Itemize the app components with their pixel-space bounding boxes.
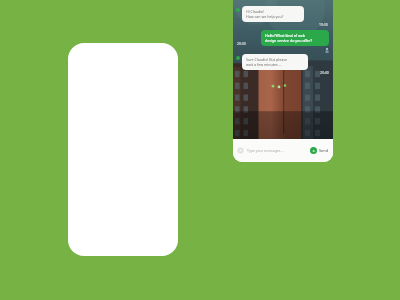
staticText: 20:30 [237, 41, 246, 46]
button[interactable]: Add attachment [237, 147, 244, 154]
button[interactable] [68, 43, 178, 256]
staticText: Hello! What kind of web design service d… [265, 33, 313, 43]
button[interactable]: Hi Claudio! How can we help you? [242, 6, 304, 22]
button[interactable]: Hello! What kind of web design service d… [261, 30, 329, 46]
button[interactable]: Type your messages ... [247, 148, 308, 153]
staticText: Type your messages ... [247, 148, 285, 153]
staticText: Sure Claudio! But please wait a few minu… [246, 57, 287, 67]
button[interactable]: Sure Claudio! But please wait a few minu… [242, 54, 308, 70]
staticText: Send [319, 148, 329, 153]
other: Contact avatar [324, 47, 330, 53]
button[interactable]: Send [310, 147, 329, 154]
staticText: 20:40 [320, 70, 329, 75]
staticText: 19:30 [319, 22, 328, 27]
staticText: Hi Claudio! How can we help you? [246, 9, 284, 19]
